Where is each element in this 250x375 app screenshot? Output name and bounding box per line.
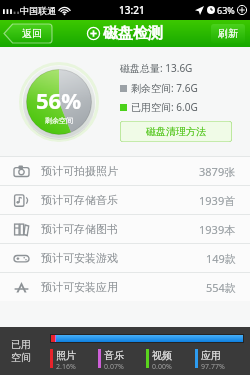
staticText: 已用 — [11, 338, 31, 351]
staticText: 磁盘总量: 13.6G — [120, 61, 193, 75]
button[interactable]: 预计可安装游戏 — [0, 244, 250, 272]
button[interactable]: 返回 — [4, 24, 52, 43]
button[interactable]: 预计可安装应用 — [0, 273, 250, 301]
staticText: 磁盘清理方法 — [146, 125, 206, 138]
staticText: 预计可安装应用 — [41, 280, 118, 294]
staticText: 剩余空间 — [45, 116, 73, 125]
staticText: 13:21 — [119, 3, 145, 17]
staticText: 照片 — [56, 349, 76, 362]
staticText: 56% — [36, 85, 82, 115]
staticText: 剩余空间: 7.6G — [131, 81, 198, 95]
staticText: 已用空间: 6.0G — [131, 100, 198, 114]
staticText: 预计可存储图书 — [41, 222, 118, 236]
button[interactable]: 预计可拍摄照片 — [0, 157, 250, 185]
staticText: 149款 — [206, 251, 236, 266]
button[interactable]: 预计可存储图书 — [0, 215, 250, 243]
staticText: 中国联通 — [20, 5, 56, 16]
staticText: 预计可存储音乐 — [41, 193, 118, 207]
button[interactable]: 刷新 — [211, 24, 245, 43]
staticText: 97.77% — [201, 362, 225, 372]
staticText: 0.00% — [152, 362, 172, 372]
staticText: 3879张 — [199, 164, 236, 179]
staticText: 磁盘检测 — [103, 24, 163, 43]
staticText: 音乐 — [104, 349, 124, 362]
button[interactable]: 磁盘清理方法 — [120, 121, 232, 142]
staticText: 554款 — [206, 280, 236, 295]
staticText: 63% — [217, 4, 235, 16]
staticText: 预计可拍摄照片 — [41, 164, 118, 178]
staticText: 预计可安装游戏 — [41, 251, 118, 265]
staticText: 1939本 — [199, 222, 236, 237]
staticText: 2.16% — [56, 362, 76, 372]
staticText: 视频 — [152, 349, 172, 362]
staticText: 返回 — [22, 27, 42, 40]
staticText: 0.07% — [104, 362, 124, 372]
button[interactable]: 预计可存储音乐 — [0, 186, 250, 214]
staticText: 1939首 — [199, 193, 236, 208]
staticText: 刷新 — [218, 27, 238, 40]
staticText: 空间 — [11, 351, 31, 364]
staticText: 应用 — [201, 349, 221, 362]
